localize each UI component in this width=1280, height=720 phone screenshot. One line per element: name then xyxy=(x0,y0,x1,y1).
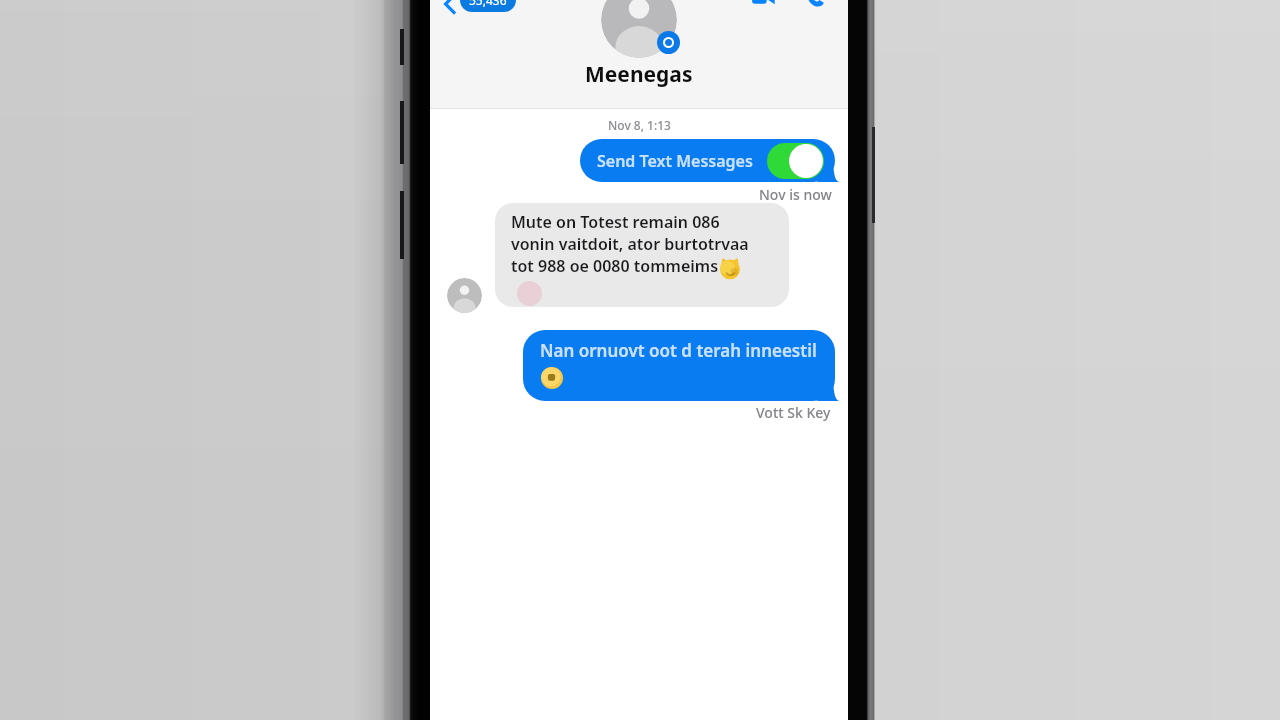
staticText: 55,436 xyxy=(469,0,507,8)
staticText: Mute on Totest remain 086 xyxy=(511,211,720,233)
staticText: Send Text Messages xyxy=(597,150,753,172)
button[interactable]: Call xyxy=(804,0,826,8)
staticText: vonin vaitdoit, ator burtotrvaa xyxy=(511,233,749,255)
button[interactable]: Mute on Totest remain 086 xyxy=(495,203,789,307)
button[interactable]: Toggle xyxy=(767,143,824,179)
staticText: Meenegas xyxy=(585,60,693,89)
staticText: tot 988 oe 0080 tommeims xyxy=(511,255,719,277)
staticText: Vott Sk Key xyxy=(756,403,831,422)
button[interactable]: Back xyxy=(434,0,468,21)
button[interactable]: 55,436 xyxy=(460,0,516,12)
button[interactable]: FaceTime xyxy=(750,0,776,11)
staticText: Nov is now xyxy=(759,185,832,204)
staticText: Nov 8, 1:13 xyxy=(608,117,671,133)
staticText: Nan ornuovt oot d terah inneestil xyxy=(540,339,817,362)
button[interactable]: Nan ornuovt oot d terah inneestil xyxy=(523,330,831,401)
button[interactable]: Send Text Messages xyxy=(580,139,831,182)
